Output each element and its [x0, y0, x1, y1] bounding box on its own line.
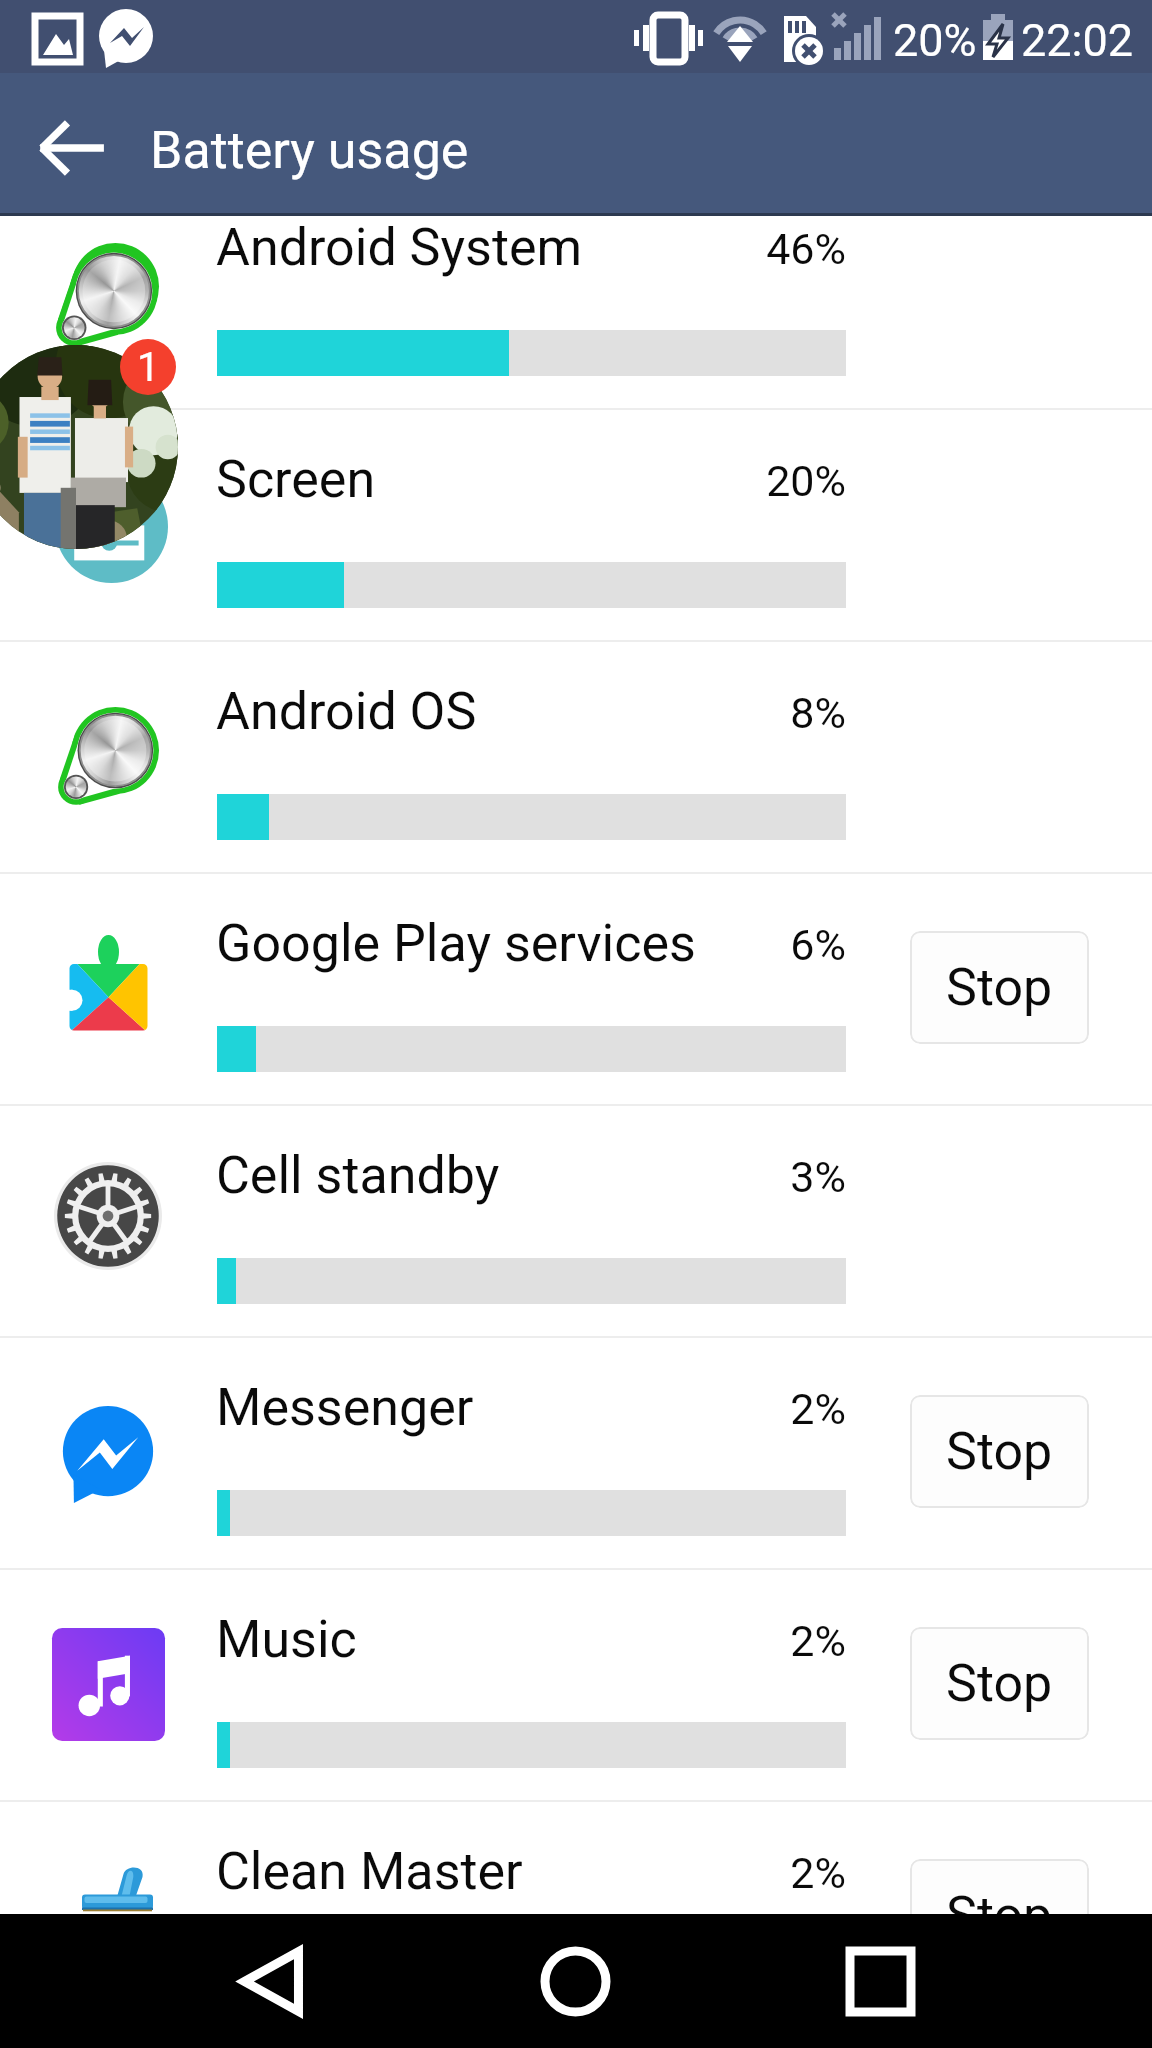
- staticText: 1: [137, 344, 160, 391]
- button[interactable]: Stop: [910, 1627, 1089, 1740]
- staticText: 2%: [600, 1848, 846, 1898]
- button[interactable]: Back: [211, 1921, 331, 2041]
- staticText: Battery usage: [150, 120, 469, 181]
- staticText: Android OS: [216, 681, 477, 742]
- button[interactable]: Stop: [910, 1859, 1089, 1972]
- button[interactable]: Knob chat head: [60, 243, 158, 341]
- staticText: Clean Master: [216, 1841, 523, 1902]
- staticText: 6%: [600, 920, 846, 970]
- staticText: 20%: [893, 14, 977, 67]
- staticText: Android System: [216, 217, 583, 278]
- staticText: Stop: [946, 1885, 1053, 1946]
- staticText: Stop: [946, 957, 1053, 1018]
- staticText: Google Play services: [216, 913, 696, 974]
- staticText: 2%: [600, 1384, 846, 1434]
- button[interactable]: Cell standby: [0, 1106, 1152, 1338]
- staticText: Messenger: [216, 1377, 474, 1438]
- staticText: 8%: [600, 688, 846, 738]
- button[interactable]: Messenger chat head: [0, 345, 178, 549]
- staticText: 20%: [600, 456, 846, 506]
- button[interactable]: Android System: [0, 178, 1152, 410]
- button[interactable]: Home: [515, 1921, 635, 2041]
- staticText: Screen: [216, 449, 376, 510]
- button[interactable]: Android OS: [0, 642, 1152, 874]
- button[interactable]: Recents: [820, 1921, 940, 2041]
- staticText: Stop: [946, 1653, 1053, 1714]
- staticText: 22:02: [1021, 14, 1134, 67]
- staticText: 3%: [600, 1152, 846, 1202]
- button[interactable]: Music: [0, 1570, 1152, 1802]
- staticText: 2%: [600, 1616, 846, 1666]
- button[interactable]: Screen: [0, 410, 1152, 642]
- button[interactable]: Messenger: [0, 1338, 1152, 1570]
- button[interactable]: Stop: [910, 1395, 1089, 1508]
- button[interactable]: Google Play services: [0, 874, 1152, 1106]
- staticText: Music: [216, 1609, 357, 1670]
- staticText: 46%: [600, 224, 846, 274]
- staticText: Cell standby: [216, 1145, 500, 1206]
- staticText: Stop: [946, 1421, 1053, 1482]
- button[interactable]: Stop: [910, 931, 1089, 1044]
- button[interactable]: Clean Master: [0, 1802, 1152, 2034]
- button[interactable]: Back: [22, 99, 120, 197]
- button[interactable]: Equalizer chat head: [55, 470, 168, 583]
